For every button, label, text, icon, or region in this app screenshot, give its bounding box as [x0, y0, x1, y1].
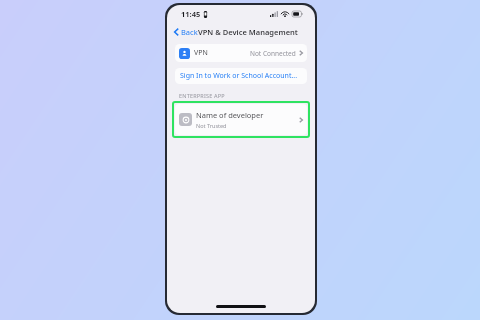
staticText: Not Connected [250, 49, 296, 58]
staticText: VPN [194, 48, 208, 58]
staticText: Not Trusted [196, 122, 227, 129]
staticText: VPN & Device Management [198, 27, 298, 37]
button[interactable]: Sign In to Work or School Account... [175, 68, 307, 84]
button[interactable]: VPN [175, 44, 307, 62]
staticText: Name of developer [196, 110, 264, 120]
staticText: ENTERPRISE APP [179, 92, 225, 99]
button[interactable]: Back [172, 25, 200, 39]
button[interactable]: Name of developer [175, 104, 307, 135]
staticText: Back [181, 27, 198, 37]
staticText: 11:45 [181, 9, 201, 19]
staticText: Sign In to Work or School Account... [180, 71, 298, 81]
